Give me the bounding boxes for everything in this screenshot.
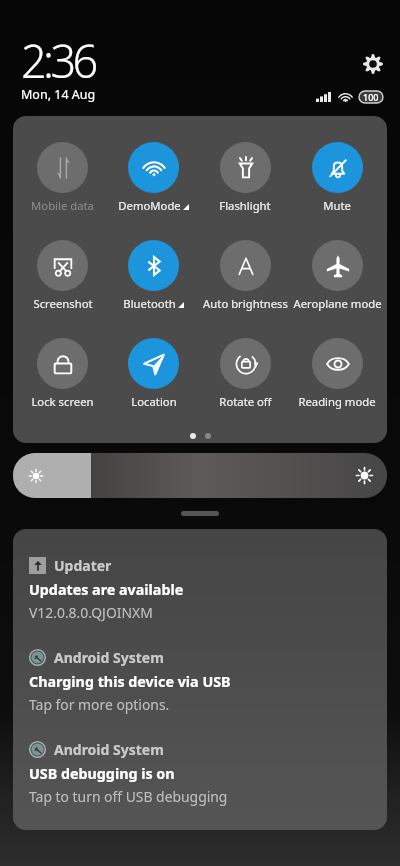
staticText: Mon, 14 Aug xyxy=(21,86,96,103)
button[interactable]: Android System xyxy=(29,648,371,714)
staticText: Tap for more options. xyxy=(29,695,170,714)
staticText: Mobile data xyxy=(31,198,94,213)
button[interactable]: Updater xyxy=(29,556,371,622)
staticText: Flashlight xyxy=(219,198,271,213)
button[interactable]: Brightness xyxy=(13,453,387,498)
staticText: Updater xyxy=(54,556,112,575)
button[interactable]: Lock screen xyxy=(17,337,108,409)
button[interactable]: Reading mode xyxy=(291,337,383,409)
staticText: 2:36 xyxy=(21,30,95,91)
button[interactable]: Bluetooth xyxy=(108,239,199,311)
staticText: V12.0.8.0.QJOINXM xyxy=(29,603,153,622)
button[interactable]: Android System xyxy=(29,740,371,806)
button[interactable]: Flashlight xyxy=(199,141,291,213)
button[interactable]: Mute xyxy=(291,141,383,213)
staticText: 100 xyxy=(363,91,379,103)
button[interactable]: Location xyxy=(108,337,199,409)
button[interactable]: Rotate off xyxy=(199,337,291,409)
staticText: Mute xyxy=(323,198,351,213)
staticText: Tap to turn off USB debugging xyxy=(29,787,228,806)
button[interactable]: Mobile data xyxy=(17,141,108,213)
button[interactable]: Settings xyxy=(360,51,386,77)
staticText: Location xyxy=(131,394,177,409)
staticText: Bluetooth xyxy=(123,296,176,311)
staticText: Rotate off xyxy=(219,394,272,409)
staticText: DemoMode xyxy=(118,198,181,213)
staticText: Updates are available xyxy=(29,580,184,599)
staticText: USB debugging is on xyxy=(29,764,175,783)
staticText: Aeroplane mode xyxy=(293,296,382,311)
button[interactable]: Screenshot xyxy=(17,239,108,311)
staticText: Auto brightness xyxy=(203,296,288,311)
button[interactable]: DemoMode xyxy=(108,141,199,213)
staticText: Android System xyxy=(54,648,164,667)
button[interactable]: Aeroplane mode xyxy=(291,239,383,311)
staticText: Android System xyxy=(54,740,164,759)
staticText: Screenshot xyxy=(33,296,93,311)
button[interactable]: Auto brightness xyxy=(199,239,291,311)
staticText: Lock screen xyxy=(31,394,94,409)
staticText: Reading mode xyxy=(298,394,376,409)
staticText: Charging this device via USB xyxy=(29,672,231,691)
